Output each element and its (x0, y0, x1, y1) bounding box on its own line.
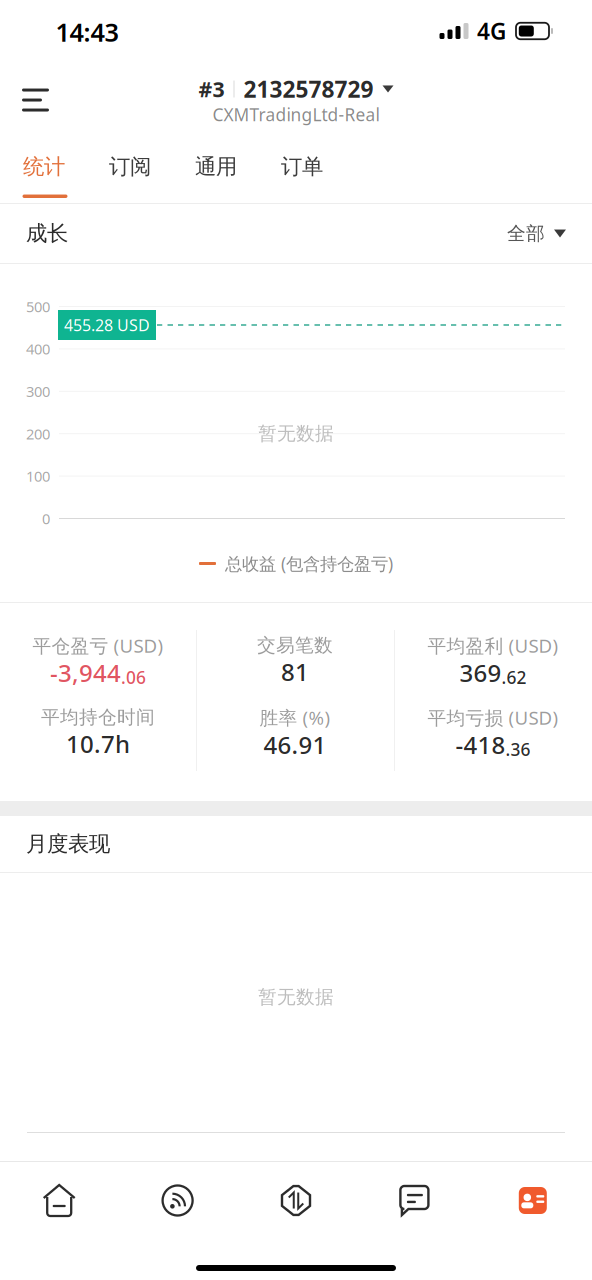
staticText: 订单 (281, 154, 323, 180)
button[interactable]: 订单 (260, 139, 346, 203)
button[interactable]: Messages (355, 1162, 474, 1239)
staticText: 交易笔数 (257, 634, 333, 657)
button[interactable]: Trade (237, 1162, 355, 1239)
staticText: 0 (42, 509, 50, 528)
staticText: 81 (281, 656, 309, 688)
staticText: .36 (505, 738, 530, 761)
button[interactable]: Profile (474, 1162, 592, 1239)
staticText: 平均盈利 (USD) (427, 633, 558, 658)
staticText: 全部 (507, 222, 545, 245)
button[interactable]: 订阅 (88, 139, 174, 203)
staticText: 成长 (26, 220, 68, 247)
staticText: 平仓盈亏 (USD) (32, 633, 163, 658)
staticText: 200 (26, 424, 50, 443)
staticText: 暂无数据 (258, 422, 334, 445)
staticText: .62 (501, 666, 526, 689)
staticText: 46.91 (263, 729, 326, 761)
staticText: 暂无数据 (258, 985, 334, 1008)
staticText: 平均亏损 (USD) (427, 705, 558, 730)
staticText: 平均持仓时间 (41, 706, 155, 729)
staticText: 14:43 (55, 15, 118, 49)
staticText: -418 (455, 729, 505, 761)
staticText: #3 (198, 75, 224, 103)
staticText: 4G (477, 16, 506, 46)
staticText: 月度表现 (26, 831, 110, 857)
button[interactable]: Menu (0, 74, 74, 126)
button[interactable]: Home (0, 1162, 118, 1239)
button[interactable]: 全部 (507, 222, 566, 245)
button[interactable]: 统计 (2, 139, 88, 203)
button[interactable]: 通用 (174, 139, 260, 203)
staticText: 500 (26, 297, 50, 316)
staticText: 通用 (195, 154, 237, 180)
staticText: 统计 (23, 154, 65, 180)
staticText: CXMTradingLtd-Real (212, 103, 379, 126)
staticText: 胜率 (%) (259, 705, 330, 730)
staticText: 订阅 (109, 154, 151, 180)
staticText: -3,944 (50, 657, 121, 689)
staticText: 2132578729 (243, 74, 373, 104)
staticText: 455.28 USD (64, 314, 150, 336)
staticText: 总收益 (包含持仓盈亏) (225, 552, 393, 575)
staticText: .06 (121, 666, 146, 689)
staticText: 400 (26, 339, 50, 359)
staticText: 10.7h (66, 728, 130, 760)
staticText: 100 (26, 466, 50, 486)
staticText: 300 (26, 382, 50, 401)
staticText: 369 (459, 657, 501, 689)
button[interactable]: Signals (118, 1162, 237, 1239)
button[interactable]: #3 (198, 74, 393, 126)
